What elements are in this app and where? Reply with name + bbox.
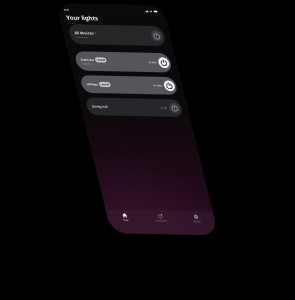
staticText: 9:41 (38, 27, 69, 49)
staticText: All devices (66, 158, 179, 188)
staticText: 3 total devices (66, 192, 138, 207)
button[interactable]: All devices (36, 124, 295, 241)
staticText: Your lights (40, 61, 226, 107)
